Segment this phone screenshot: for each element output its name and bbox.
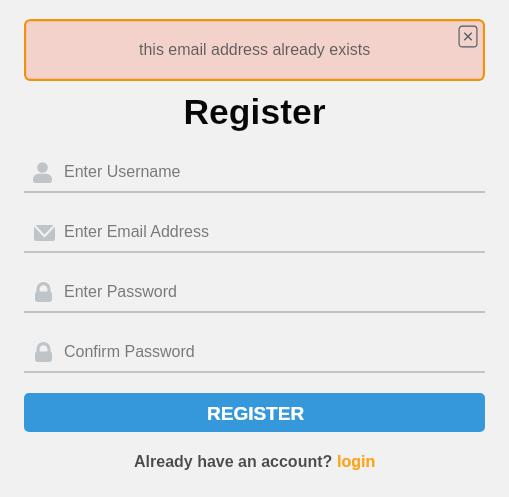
button[interactable]: Confirm Password [24,323,485,373]
staticText: Register [0,92,509,132]
staticText: Enter Password [64,283,177,301]
staticText: REGISTER [207,403,305,424]
staticText: Enter Username [64,163,181,181]
button[interactable]: REGISTER [24,393,485,432]
staticText: Enter Email Address [64,223,209,241]
button[interactable]: Close alert [458,25,478,48]
button[interactable]: Enter Username [24,143,485,193]
staticText: this email address already exists [139,41,371,59]
button[interactable]: login [337,453,376,471]
staticText: login [337,453,376,471]
staticText: Already have an account? [134,453,337,471]
staticText: Confirm Password [64,343,195,361]
button[interactable]: Enter Password [24,263,485,313]
button[interactable]: Enter Email Address [24,203,485,253]
